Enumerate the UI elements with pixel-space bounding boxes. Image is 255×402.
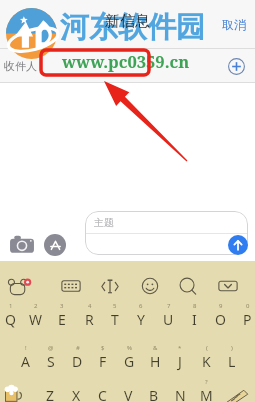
- staticText: 4: [88, 302, 92, 310]
- staticText: O: [215, 310, 226, 329]
- staticText: 9: [219, 302, 223, 310]
- staticText: C: [98, 386, 107, 402]
- button[interactable]: 取消: [210, 7, 255, 42]
- staticText: !: [25, 344, 27, 352]
- button[interactable]: Search: [176, 274, 200, 298]
- button[interactable]: Send: [228, 235, 248, 255]
- staticText: R: [85, 310, 94, 329]
- staticText: X: [72, 386, 81, 402]
- staticText: &: [153, 344, 158, 352]
- button[interactable]: Keyboard layout: [59, 274, 83, 298]
- staticText: H: [150, 352, 161, 371]
- staticText: 2: [34, 302, 38, 310]
- staticText: L: [228, 352, 236, 371]
- staticText: B: [149, 386, 159, 402]
- staticText: T: [111, 310, 119, 329]
- staticText: 取消: [222, 17, 246, 32]
- button[interactable]: Camera: [9, 232, 35, 258]
- button[interactable]: Delete: [222, 383, 250, 402]
- staticText: 6: [139, 302, 143, 310]
- staticText: F: [99, 352, 107, 371]
- button[interactable]: C: [89, 378, 115, 402]
- button[interactable]: V: [115, 378, 141, 402]
- staticText: 河东软件园: [60, 9, 205, 46]
- staticText: P: [243, 310, 252, 329]
- button[interactable]: 8: [181, 302, 207, 330]
- button[interactable]: 主题: [85, 211, 248, 255]
- button[interactable]: Add contact: [223, 53, 249, 79]
- button[interactable]: Hide keyboard: [216, 274, 240, 298]
- button[interactable]: X: [63, 378, 89, 402]
- staticText: ): [231, 344, 233, 352]
- button[interactable]: @: [38, 344, 64, 372]
- staticText: U: [163, 310, 174, 329]
- button[interactable]: 2: [23, 302, 49, 330]
- staticText: 3: [60, 302, 64, 310]
- staticText: (: [206, 344, 208, 352]
- button[interactable]: Emoji: [138, 274, 162, 298]
- button[interactable]: 新信息: [105, 12, 150, 31]
- staticText: ?: [205, 378, 208, 386]
- button[interactable]: Apps: [44, 234, 66, 256]
- button[interactable]: 6: [128, 302, 154, 330]
- button[interactable]: &: [142, 344, 168, 372]
- staticText: Z: [46, 386, 55, 402]
- button[interactable]: 1: [0, 302, 23, 330]
- staticText: 5: [113, 302, 117, 310]
- staticText: *: [178, 344, 182, 352]
- staticText: %: [127, 344, 132, 352]
- staticText: W: [29, 310, 43, 329]
- staticText: 8: [193, 302, 197, 310]
- staticText: $: [101, 344, 105, 352]
- staticText: #: [76, 344, 80, 352]
- button[interactable]: $: [90, 344, 116, 372]
- staticText: V: [124, 386, 133, 402]
- staticText: K: [202, 352, 211, 371]
- staticText: 1: [9, 302, 13, 310]
- button[interactable]: B: [141, 378, 167, 402]
- staticText: M: [200, 386, 213, 402]
- button[interactable]: *: [167, 344, 193, 372]
- button[interactable]: Move cursor: [98, 274, 122, 298]
- button[interactable]: ?: [193, 378, 219, 402]
- staticText: E: [58, 310, 66, 329]
- button[interactable]: %: [116, 344, 142, 372]
- staticText: @: [48, 344, 54, 352]
- staticText: 主题: [94, 216, 114, 229]
- staticText: 7: [167, 302, 171, 310]
- button[interactable]: 0: [234, 302, 255, 330]
- button[interactable]: Input method: [7, 274, 31, 298]
- button[interactable]: 4: [76, 302, 102, 330]
- staticText: A: [21, 352, 30, 371]
- button[interactable]: !: [12, 344, 38, 372]
- button[interactable]: 5: [102, 302, 128, 330]
- button[interactable]: Z: [37, 378, 63, 402]
- staticText: D: [72, 352, 83, 371]
- staticText: J: [178, 352, 182, 371]
- staticText: S: [47, 352, 55, 371]
- button[interactable]: 3: [49, 302, 75, 330]
- staticText: Y: [137, 310, 145, 329]
- staticText: 收件人: [4, 59, 37, 73]
- button[interactable]: ): [219, 344, 245, 372]
- staticText: 0: [246, 302, 250, 310]
- staticText: Q: [5, 310, 16, 329]
- staticText: N: [175, 386, 186, 402]
- button[interactable]: (: [193, 344, 219, 372]
- staticText: www.pc0359.cn: [62, 50, 190, 72]
- button[interactable]: N: [167, 378, 193, 402]
- staticText: G: [124, 352, 135, 371]
- button[interactable]: 7: [155, 302, 181, 330]
- staticText: I: [192, 310, 197, 329]
- button[interactable]: Shift: [2, 382, 24, 402]
- button[interactable]: 9: [207, 302, 233, 330]
- button[interactable]: #: [64, 344, 90, 372]
